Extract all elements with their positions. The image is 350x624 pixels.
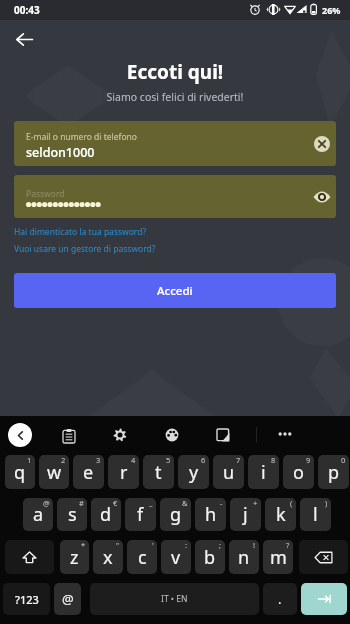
staticText: k (276, 502, 286, 527)
staticText: ?123 (15, 592, 39, 607)
button[interactable]: r (108, 455, 139, 489)
button[interactable]: e (73, 455, 104, 489)
button[interactable]: IT • EN (90, 583, 259, 615)
button[interactable]: Show password (312, 187, 332, 207)
staticText: - (220, 498, 223, 508)
button[interactable]: Theme (159, 422, 185, 448)
button[interactable]: o (283, 455, 314, 489)
staticText: x (103, 545, 113, 570)
button[interactable]: v (161, 540, 191, 574)
staticText: Siamo così felici di rivederti! (0, 90, 350, 104)
button[interactable]: u (213, 455, 244, 489)
staticText: Password (26, 188, 65, 200)
button[interactable]: j (230, 498, 261, 531)
button[interactable]: ?123 (3, 583, 50, 615)
staticText: 26% (322, 4, 341, 16)
staticText: i (261, 460, 266, 485)
staticText: y (189, 460, 199, 485)
staticText: v (171, 545, 181, 570)
button[interactable]: z (60, 540, 89, 574)
button[interactable]: Accedi (14, 273, 336, 308)
button[interactable]: q (5, 455, 35, 489)
staticText: j (243, 502, 248, 527)
button[interactable]: m (263, 540, 293, 574)
staticText: z (70, 545, 79, 570)
button[interactable]: b (195, 540, 225, 574)
staticText: 00:43 (14, 3, 40, 17)
staticText: m (270, 545, 287, 570)
staticText: 9 (306, 455, 311, 465)
staticText: u (223, 460, 235, 485)
staticText: @ (62, 590, 74, 608)
staticText: ' (152, 540, 154, 550)
staticText: s (68, 502, 77, 527)
staticText: IT • EN (161, 593, 188, 605)
staticText: . (278, 590, 282, 608)
staticText: h (205, 502, 217, 527)
staticText: e (83, 460, 94, 485)
staticText: ; (219, 540, 222, 550)
button[interactable]: Backspace (299, 540, 348, 574)
button[interactable]: d (91, 498, 121, 531)
button[interactable]: l (300, 498, 331, 531)
button[interactable]: a (23, 498, 53, 531)
button[interactable]: k (265, 498, 296, 531)
staticText: E-mail o numero di telefono (26, 131, 138, 143)
staticText: # (79, 498, 84, 508)
staticText: 6 (201, 455, 206, 465)
button[interactable]: s (57, 498, 87, 531)
button[interactable]: w (39, 455, 69, 489)
button[interactable]: n (229, 540, 259, 574)
staticText: ! (253, 540, 256, 550)
staticText: g (170, 502, 182, 527)
button[interactable]: c (127, 540, 157, 574)
button[interactable]: Vuoi usare un gestore di password? (14, 243, 156, 255)
button[interactable]: x (93, 540, 123, 574)
staticText: d (100, 502, 112, 527)
button[interactable]: Resize keyboard (210, 422, 236, 448)
button[interactable]: Settings (107, 422, 133, 448)
staticText: 7 (236, 455, 241, 465)
button[interactable]: Enter (301, 583, 347, 615)
staticText: : (185, 540, 188, 550)
staticText: 4 (131, 455, 136, 465)
button[interactable]: i (248, 455, 279, 489)
staticText: * (81, 540, 86, 550)
button[interactable]: Back (7, 22, 41, 56)
staticText: 0 (341, 455, 346, 465)
button[interactable]: Back (8, 423, 32, 447)
staticText: Accedi (157, 283, 193, 299)
button[interactable]: Clear text (312, 134, 332, 154)
staticText: b (204, 545, 216, 570)
staticText: 2 (61, 455, 66, 465)
button[interactable]: Clipboard (56, 422, 82, 448)
staticText: t (155, 460, 162, 485)
staticText: f (137, 502, 144, 527)
staticText: 5 (166, 455, 171, 465)
button[interactable]: h (195, 498, 226, 531)
button[interactable]: p (318, 455, 349, 489)
button[interactable]: Hai dimenticato la tua password? (14, 226, 147, 238)
staticText: c (138, 545, 147, 570)
staticText: o (293, 460, 304, 485)
staticText: _ (149, 498, 153, 508)
button[interactable]: t (143, 455, 174, 489)
staticText: r (120, 460, 128, 485)
staticText: € (113, 498, 118, 508)
button[interactable]: More options (272, 422, 298, 448)
staticText: & (182, 498, 188, 508)
button[interactable]: E-mail o numero di telefono (14, 121, 336, 166)
button[interactable]: . (263, 583, 297, 615)
staticText: @ (43, 498, 50, 508)
button[interactable]: Shift (5, 540, 54, 574)
button[interactable]: Password (14, 175, 336, 218)
staticText: n (238, 545, 250, 570)
button[interactable]: g (160, 498, 191, 531)
staticText: 3 (96, 455, 101, 465)
staticText: a (33, 502, 44, 527)
button[interactable]: f (125, 498, 156, 531)
staticText: " (116, 540, 120, 550)
staticText: w (47, 460, 62, 485)
button[interactable]: @ (54, 583, 81, 615)
button[interactable]: y (178, 455, 209, 489)
